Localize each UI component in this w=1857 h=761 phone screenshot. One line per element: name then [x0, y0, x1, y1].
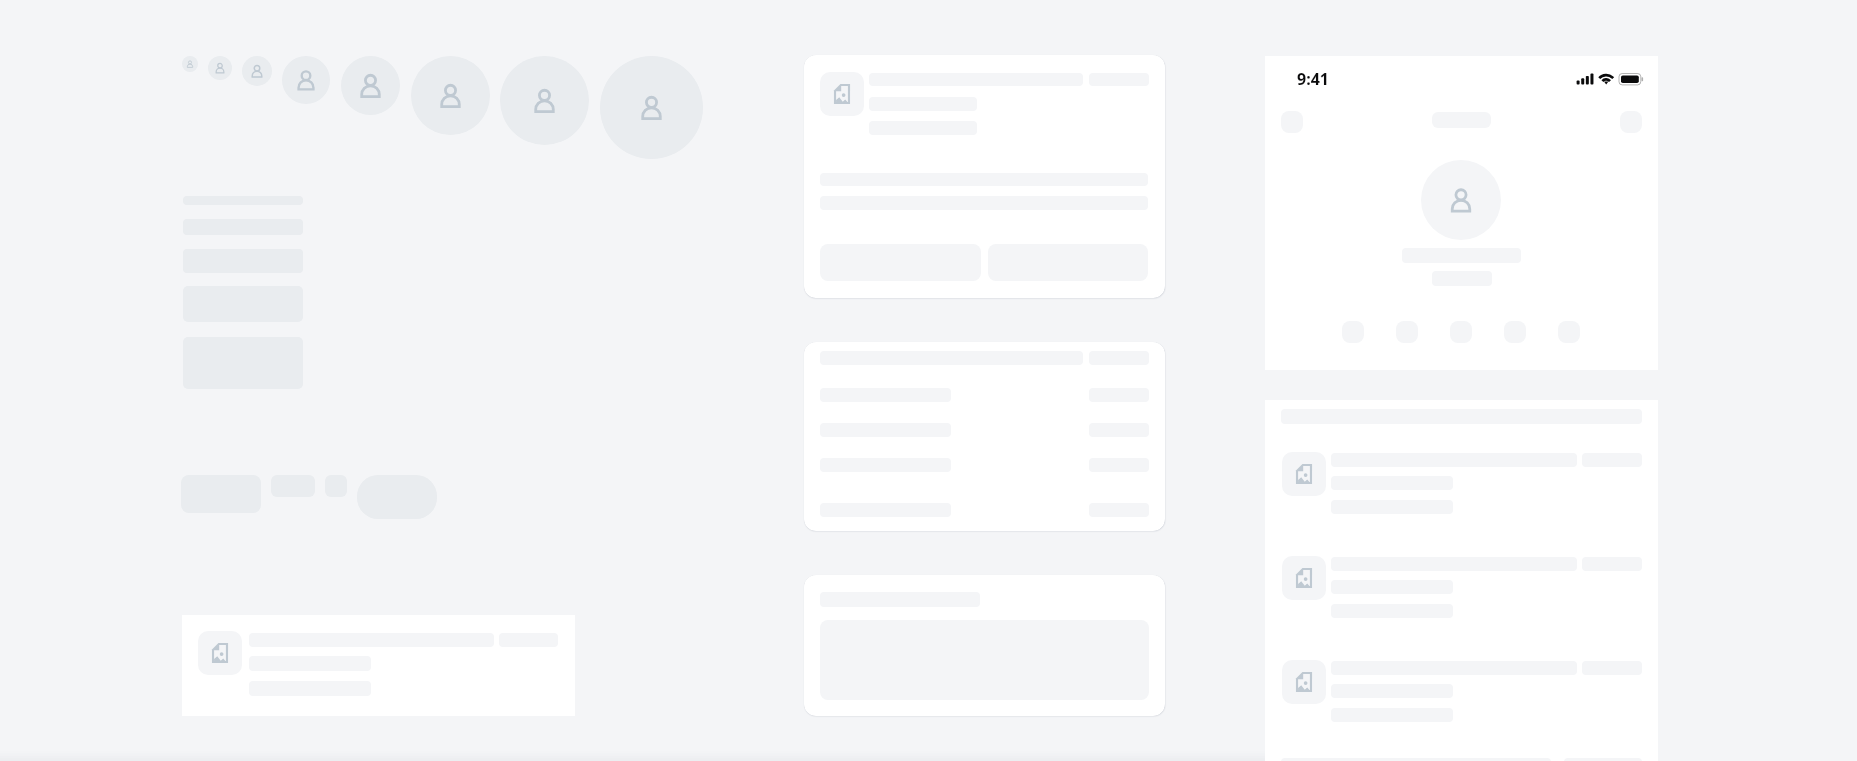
other: Image placeholder	[1282, 660, 1326, 704]
button[interactable]: Avatar placeholder	[1421, 160, 1501, 240]
button[interactable]	[804, 342, 1165, 531]
button[interactable]: Avatar placeholder	[208, 56, 232, 80]
staticText: 9:41	[1297, 68, 1329, 90]
other: Image placeholder	[1282, 452, 1326, 496]
button[interactable]: Image placeholder	[182, 615, 575, 716]
button[interactable]: List item	[1265, 442, 1658, 526]
button[interactable]: Home	[1342, 321, 1364, 343]
button[interactable]: Back	[1281, 111, 1303, 133]
button[interactable]: Avatar placeholder	[282, 56, 330, 104]
button[interactable]: Profile	[1558, 321, 1580, 343]
button[interactable]: Avatar placeholder	[341, 56, 400, 115]
button[interactable]: More options	[1620, 111, 1642, 133]
button[interactable]	[804, 575, 1165, 716]
button[interactable]: Avatar placeholder	[182, 56, 198, 72]
button[interactable]: Avatar placeholder	[411, 56, 490, 135]
other: Image placeholder	[198, 631, 242, 675]
button[interactable]: Avatar placeholder	[242, 56, 272, 86]
button[interactable]: Avatar placeholder	[500, 56, 589, 145]
button[interactable]: Activity	[1504, 321, 1526, 343]
other: Image placeholder	[1282, 556, 1326, 600]
button[interactable]: List item	[1265, 650, 1658, 734]
button[interactable]: Button placeholder	[357, 475, 437, 519]
button[interactable]: Add	[1450, 321, 1472, 343]
button[interactable]: Image placeholder	[804, 55, 1165, 298]
button[interactable]: Avatar placeholder	[600, 56, 703, 159]
other: Image placeholder	[820, 72, 864, 116]
button[interactable]: List item	[1265, 546, 1658, 630]
button[interactable]: Search	[1396, 321, 1418, 343]
